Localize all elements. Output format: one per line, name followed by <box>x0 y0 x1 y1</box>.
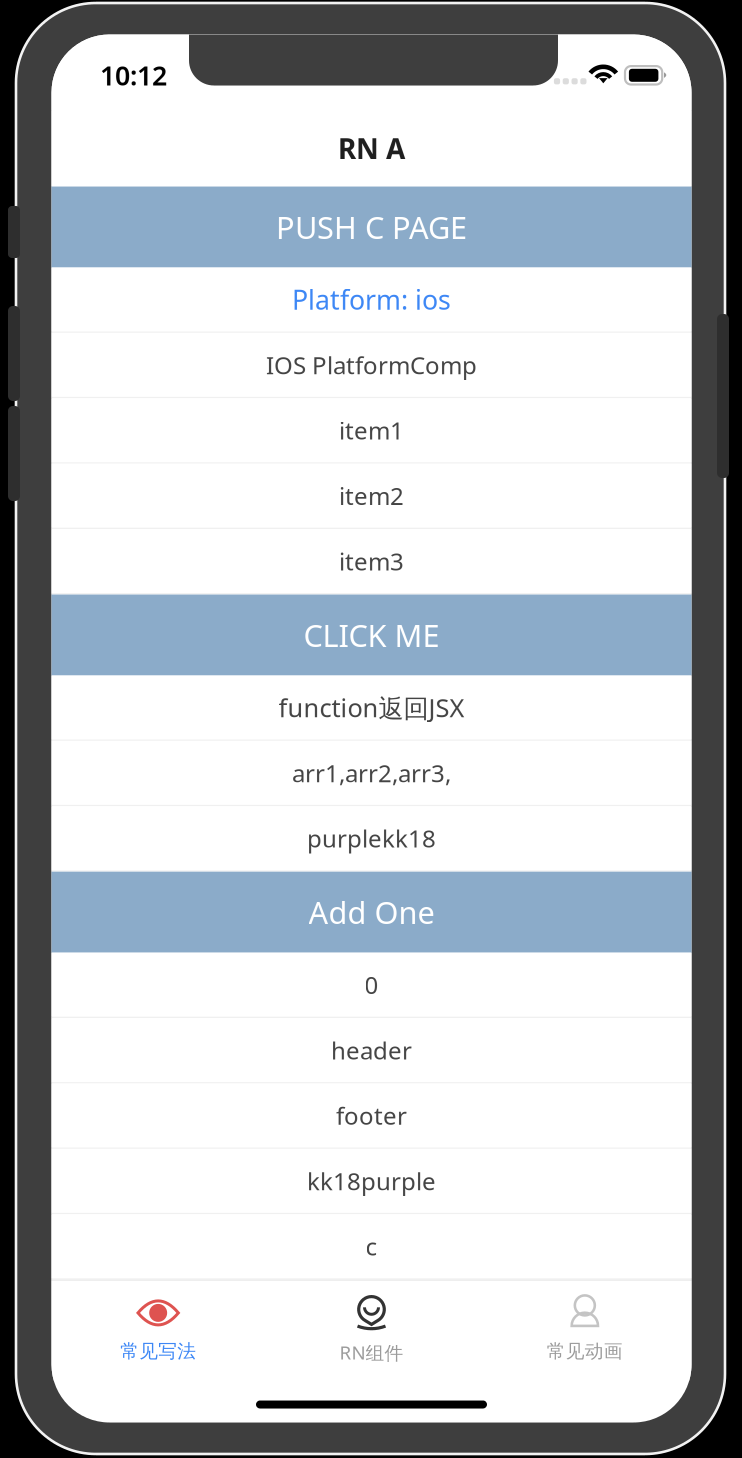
staticText: item1 <box>339 414 404 446</box>
staticText: 常见动画 <box>547 1340 623 1363</box>
staticText: Add One <box>308 892 434 932</box>
staticText: 常见写法 <box>120 1340 196 1363</box>
staticText: IOS PlatformComp <box>266 349 477 381</box>
button[interactable]: RN组件 <box>265 1281 478 1381</box>
staticText: 10:12 <box>100 57 167 93</box>
staticText: item3 <box>339 545 404 577</box>
staticText: PUSH C PAGE <box>276 207 467 247</box>
staticText: RN A <box>338 130 405 167</box>
staticText: Platform: ios <box>292 282 451 317</box>
staticText: item2 <box>339 480 404 512</box>
button[interactable]: CLICK ME <box>51 594 691 675</box>
staticText: 0 <box>364 969 378 1001</box>
staticText: kk18purple <box>307 1165 436 1197</box>
staticText: footer <box>336 1100 407 1131</box>
staticText: RN组件 <box>339 1340 403 1365</box>
staticText: header <box>331 1034 412 1066</box>
staticText: purplekk18 <box>307 822 436 854</box>
button[interactable]: PUSH C PAGE <box>51 186 691 267</box>
staticText: arr1,arr2,arr3, <box>292 757 451 789</box>
staticText: c <box>365 1230 377 1262</box>
staticText: CLICK ME <box>303 615 439 655</box>
staticText: function返回JSX <box>278 691 464 724</box>
button[interactable]: 常见写法 <box>51 1281 265 1381</box>
button[interactable]: Add One <box>51 872 691 953</box>
button[interactable]: 常见动画 <box>478 1281 691 1381</box>
